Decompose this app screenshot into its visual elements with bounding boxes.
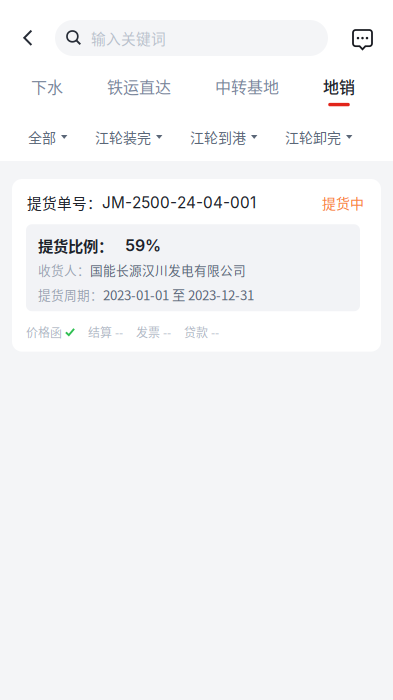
- staticText: --: [163, 323, 171, 341]
- staticText: 国能长源汉川发电有限公司: [90, 260, 246, 279]
- staticText: 结算: [88, 323, 112, 341]
- staticText: 提货单号：: [27, 192, 102, 213]
- staticText: 发票: [136, 323, 160, 341]
- staticText: 江轮到港: [190, 127, 246, 147]
- staticText: 59%: [113, 236, 161, 255]
- staticText: 全部: [28, 127, 56, 147]
- button[interactable]: 下水: [31, 72, 63, 112]
- staticText: JM-2500-24-04-001: [102, 193, 256, 212]
- staticText: --: [115, 323, 123, 341]
- staticText: 地销: [323, 75, 355, 98]
- staticText: 提货中: [322, 192, 364, 213]
- button[interactable]: 江轮装完: [95, 122, 163, 152]
- staticText: 收货人：: [38, 260, 90, 279]
- staticText: 提货比例：: [38, 234, 113, 256]
- staticText: 提货周期：: [38, 285, 103, 304]
- button[interactable]: 中转基地: [215, 72, 279, 112]
- staticText: 中转基地: [215, 75, 279, 98]
- staticText: 2023-01-01 至 2023-12-31: [103, 285, 254, 304]
- staticText: 贷款: [184, 323, 208, 341]
- staticText: 价格函: [26, 323, 62, 341]
- staticText: 输入关键词: [91, 27, 166, 49]
- button[interactable]: 江轮卸完: [285, 122, 353, 152]
- staticText: --: [211, 323, 219, 341]
- staticText: 江轮卸完: [285, 127, 341, 147]
- staticText: 江轮装完: [95, 127, 151, 147]
- button[interactable]: 江轮到港: [190, 122, 258, 152]
- button[interactable]: 铁运直达: [107, 72, 171, 112]
- button[interactable]: 地销: [323, 72, 355, 112]
- button[interactable]: 输入关键词: [55, 20, 328, 56]
- button[interactable]: 全部: [28, 122, 68, 152]
- button[interactable]: Messages: [342, 20, 383, 56]
- staticText: 铁运直达: [107, 75, 171, 98]
- button[interactable]: Back: [1, 20, 55, 56]
- staticText: 下水: [31, 75, 63, 98]
- button[interactable]: 提货单号：: [12, 179, 381, 352]
